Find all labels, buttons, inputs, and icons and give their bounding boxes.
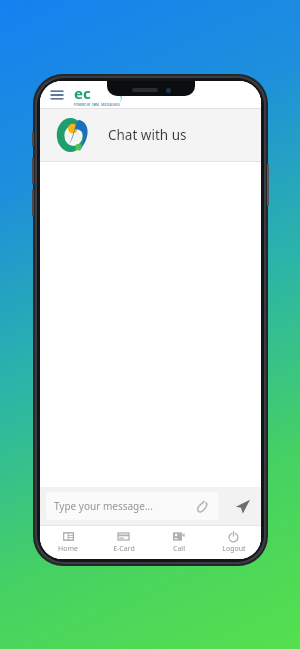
button[interactable]: Home bbox=[40, 526, 96, 559]
staticText: E-Card bbox=[113, 544, 135, 554]
button[interactable]: Attach file bbox=[193, 497, 211, 515]
staticText: Chat with us bbox=[108, 126, 187, 144]
staticText: POWERED BY OMNI - MEDICALINESS bbox=[74, 103, 120, 107]
staticText: Call bbox=[173, 544, 185, 554]
button[interactable]: Menu bbox=[48, 86, 66, 104]
button[interactable]: Send bbox=[229, 493, 255, 519]
staticText: Home bbox=[58, 544, 78, 554]
button[interactable]: Type your message... bbox=[46, 492, 219, 520]
staticText: Logout bbox=[222, 544, 246, 554]
button[interactable]: E-Card bbox=[96, 526, 151, 559]
staticText: ec bbox=[74, 83, 91, 103]
staticText: Type your message... bbox=[54, 499, 153, 513]
button[interactable]: Logout bbox=[206, 526, 261, 559]
button[interactable]: Call bbox=[151, 526, 206, 559]
button[interactable]: Chat with us bbox=[40, 109, 261, 161]
